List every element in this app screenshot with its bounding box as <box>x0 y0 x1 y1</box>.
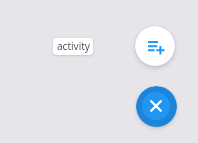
button[interactable]: Close <box>136 86 177 127</box>
button[interactable]: activity <box>53 38 93 55</box>
staticText: activity <box>57 39 90 53</box>
button[interactable]: Add to playlist <box>135 26 175 66</box>
